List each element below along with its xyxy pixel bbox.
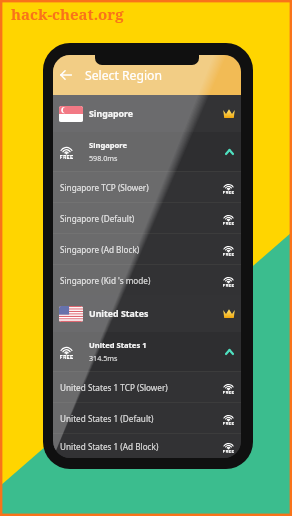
staticText: United States 1 (Default) <box>60 413 154 424</box>
button[interactable]: Singapore (Ad Block) <box>53 234 241 264</box>
staticText: United States 1 TCP (Slower) <box>60 382 168 393</box>
staticText: Singapore <box>89 108 134 120</box>
staticText: 598.0ms <box>89 153 118 163</box>
button[interactable]: Collapse <box>221 344 237 360</box>
button[interactable]: Singapore (Kid 's mode) <box>53 265 241 295</box>
button[interactable]: Singapore <box>53 95 241 132</box>
staticText: Singapore (Ad Block) <box>60 244 140 255</box>
button[interactable]: Singapore (Default) <box>53 203 241 233</box>
staticText: 314.5ms <box>89 353 118 363</box>
button[interactable]: United States <box>53 295 241 332</box>
button[interactable]: Singapore TCP (Slower) <box>53 172 241 202</box>
staticText: Singapore (Kid 's mode) <box>60 275 151 286</box>
button[interactable]: Singapore <box>53 132 241 171</box>
staticText: Select Region <box>85 67 163 84</box>
staticText: Singapore <box>89 140 128 150</box>
button[interactable]: Collapse <box>221 144 237 160</box>
staticText: United States 1 <box>89 340 147 350</box>
staticText: United States <box>89 308 149 320</box>
button[interactable]: United States 1 (Default) <box>53 403 241 433</box>
staticText: United States 1 (Ad Block) <box>60 441 159 452</box>
button[interactable]: United States 1 <box>53 332 241 371</box>
staticText: hack-cheat.org <box>11 4 124 24</box>
staticText: Singapore (Default) <box>60 213 135 224</box>
button[interactable]: United States 1 (Ad Block) <box>53 434 241 458</box>
button[interactable]: Back <box>54 60 77 90</box>
button[interactable]: United States 1 TCP (Slower) <box>53 372 241 402</box>
staticText: Singapore TCP (Slower) <box>60 182 149 193</box>
